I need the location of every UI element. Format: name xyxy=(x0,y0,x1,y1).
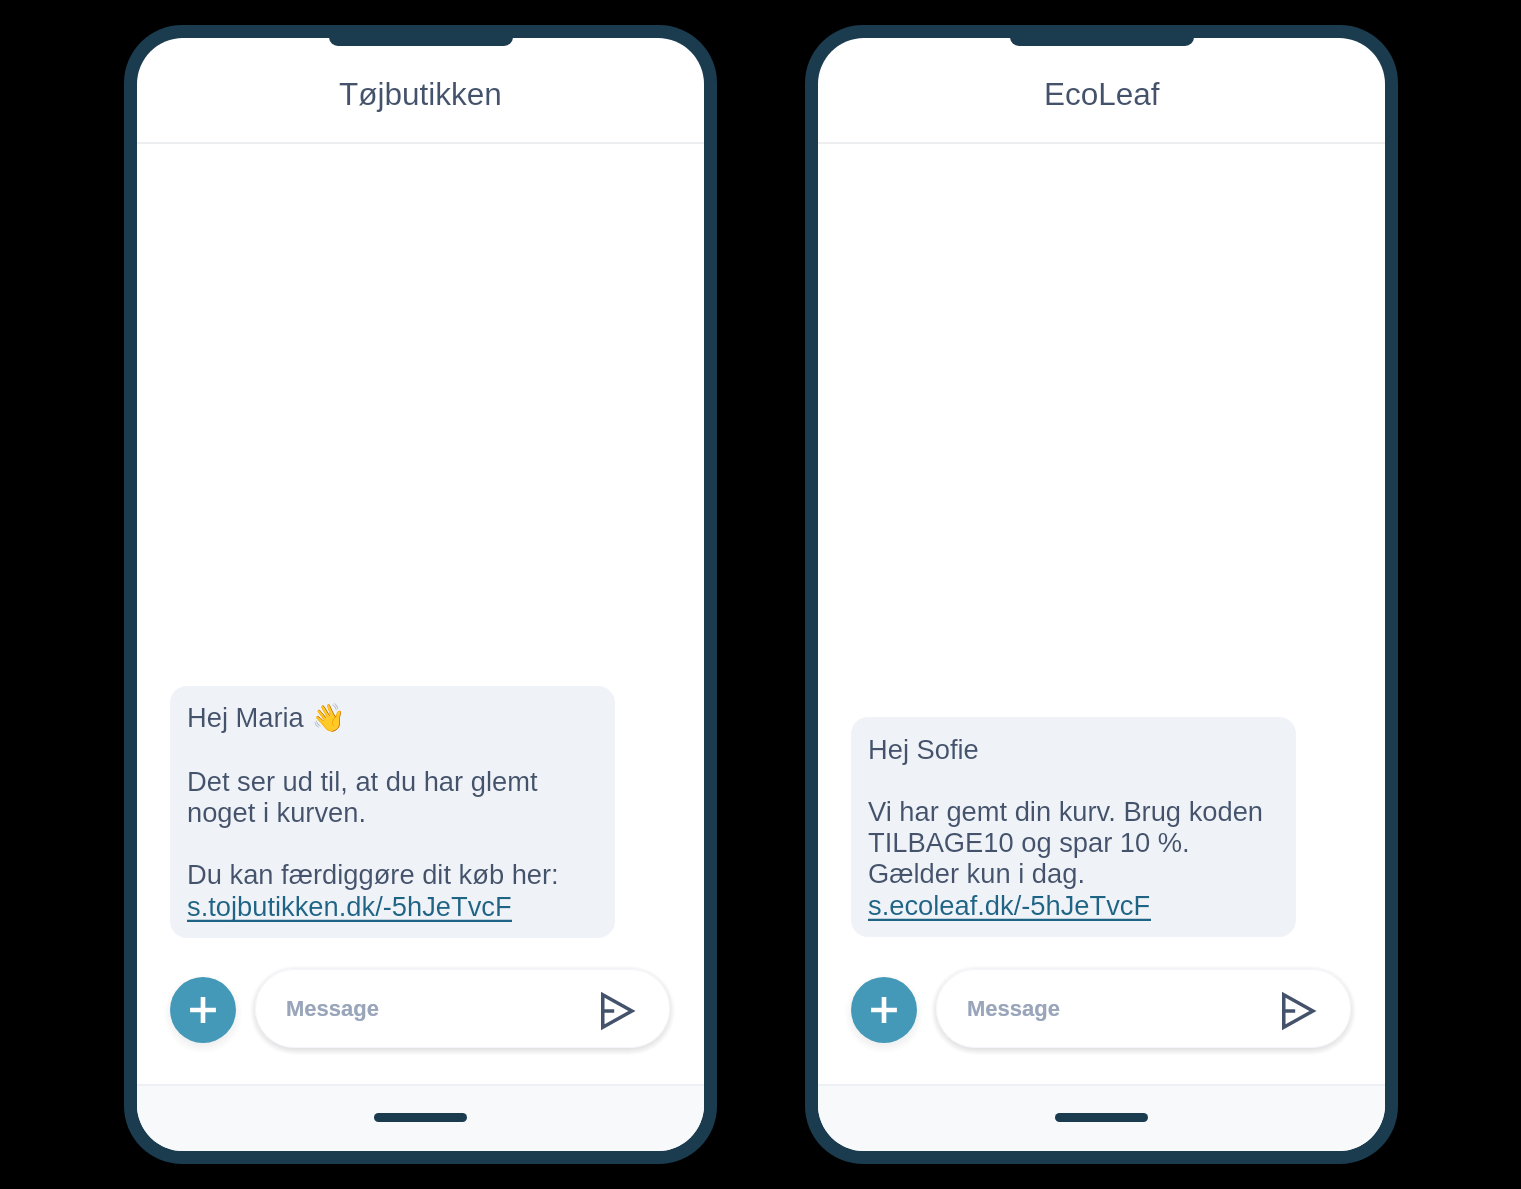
button[interactable]: Message xyxy=(936,969,1351,1048)
staticText: Du kan færdiggøre dit køb her: xyxy=(187,859,559,889)
staticText: Tøjbutikken xyxy=(339,76,502,111)
button[interactable]: Message xyxy=(255,969,670,1048)
button[interactable]: Send xyxy=(594,988,640,1034)
staticText: Hej Maria 👋 xyxy=(187,702,346,734)
staticText: Hej Sofie xyxy=(868,734,979,764)
staticText: Message xyxy=(967,996,1060,1021)
staticText: Message xyxy=(286,996,379,1021)
button[interactable]: Add attachment xyxy=(851,977,917,1043)
button[interactable]: Send xyxy=(1275,988,1321,1034)
button[interactable]: Add attachment xyxy=(170,977,236,1043)
staticText: Det ser ud til, at du har glemt noget i … xyxy=(187,766,538,827)
staticText: s.tojbutikken.dk/-5hJeTvcF xyxy=(187,891,512,921)
staticText: Vi har gemt din kurv. Brug koden TILBAGE… xyxy=(868,796,1264,888)
staticText: EcoLeaf xyxy=(1044,76,1160,111)
staticText: s.ecoleaf.dk/-5hJeTvcF xyxy=(868,890,1151,920)
